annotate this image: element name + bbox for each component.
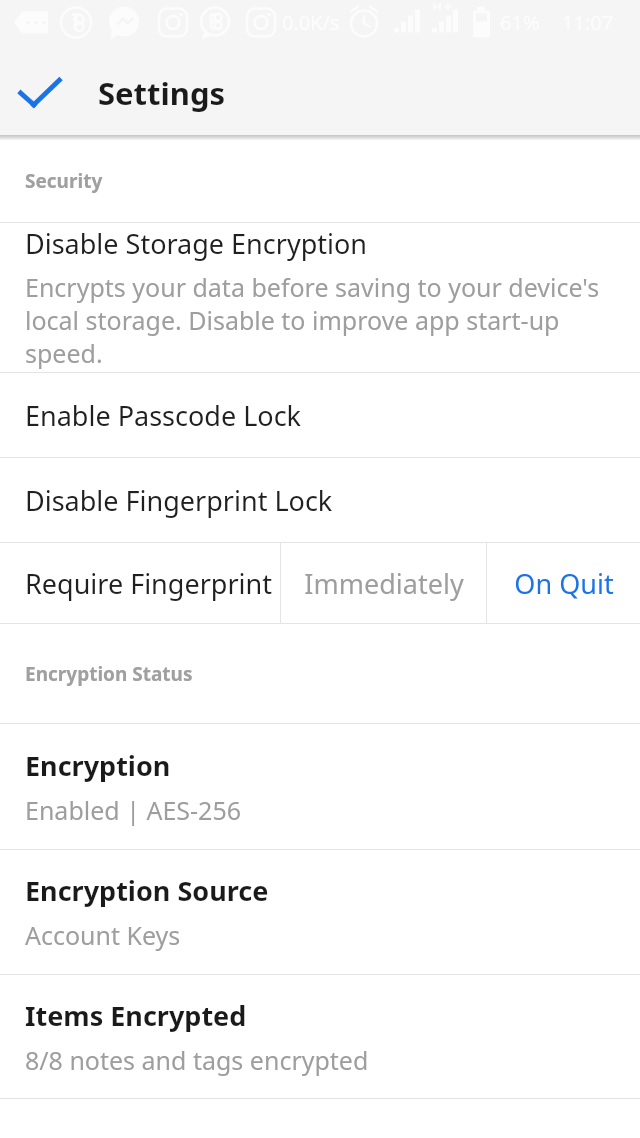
button[interactable]: Encryption Source bbox=[0, 850, 640, 974]
staticText: Enabled | AES-256 bbox=[25, 793, 242, 827]
staticText: Immediately bbox=[304, 565, 464, 602]
button[interactable]: Encryption bbox=[0, 724, 640, 849]
staticText: Settings bbox=[98, 72, 226, 114]
button[interactable]: Enable Passcode Lock bbox=[0, 373, 640, 457]
staticText: Account Keys bbox=[25, 918, 181, 952]
staticText: Disable Storage Encryption bbox=[25, 225, 368, 262]
staticText: Security bbox=[25, 168, 103, 194]
button[interactable]: Items Encrypted bbox=[0, 975, 640, 1098]
button[interactable]: Require Fingerprint bbox=[0, 543, 280, 623]
staticText: Encryption bbox=[25, 747, 171, 784]
staticText: 8/8 notes and tags encrypted bbox=[25, 1043, 369, 1077]
button[interactable]: Disable Fingerprint Lock bbox=[0, 458, 640, 542]
staticText: Require Fingerprint bbox=[25, 565, 272, 602]
button[interactable]: Confirm bbox=[8, 61, 72, 125]
button[interactable]: Disable Storage Encryption bbox=[0, 223, 640, 372]
button[interactable]: On Quit bbox=[487, 543, 640, 623]
button[interactable]: Immediately bbox=[281, 543, 486, 623]
staticText: Encryption Source bbox=[25, 872, 269, 909]
staticText: Encryption Status bbox=[25, 661, 193, 687]
staticText: Items Encrypted bbox=[25, 997, 247, 1034]
staticText: On Quit bbox=[514, 565, 614, 602]
staticText: Enable Passcode Lock bbox=[25, 397, 302, 434]
staticText: Encrypts your data before saving to your… bbox=[25, 270, 615, 370]
staticText: Disable Fingerprint Lock bbox=[25, 482, 333, 519]
